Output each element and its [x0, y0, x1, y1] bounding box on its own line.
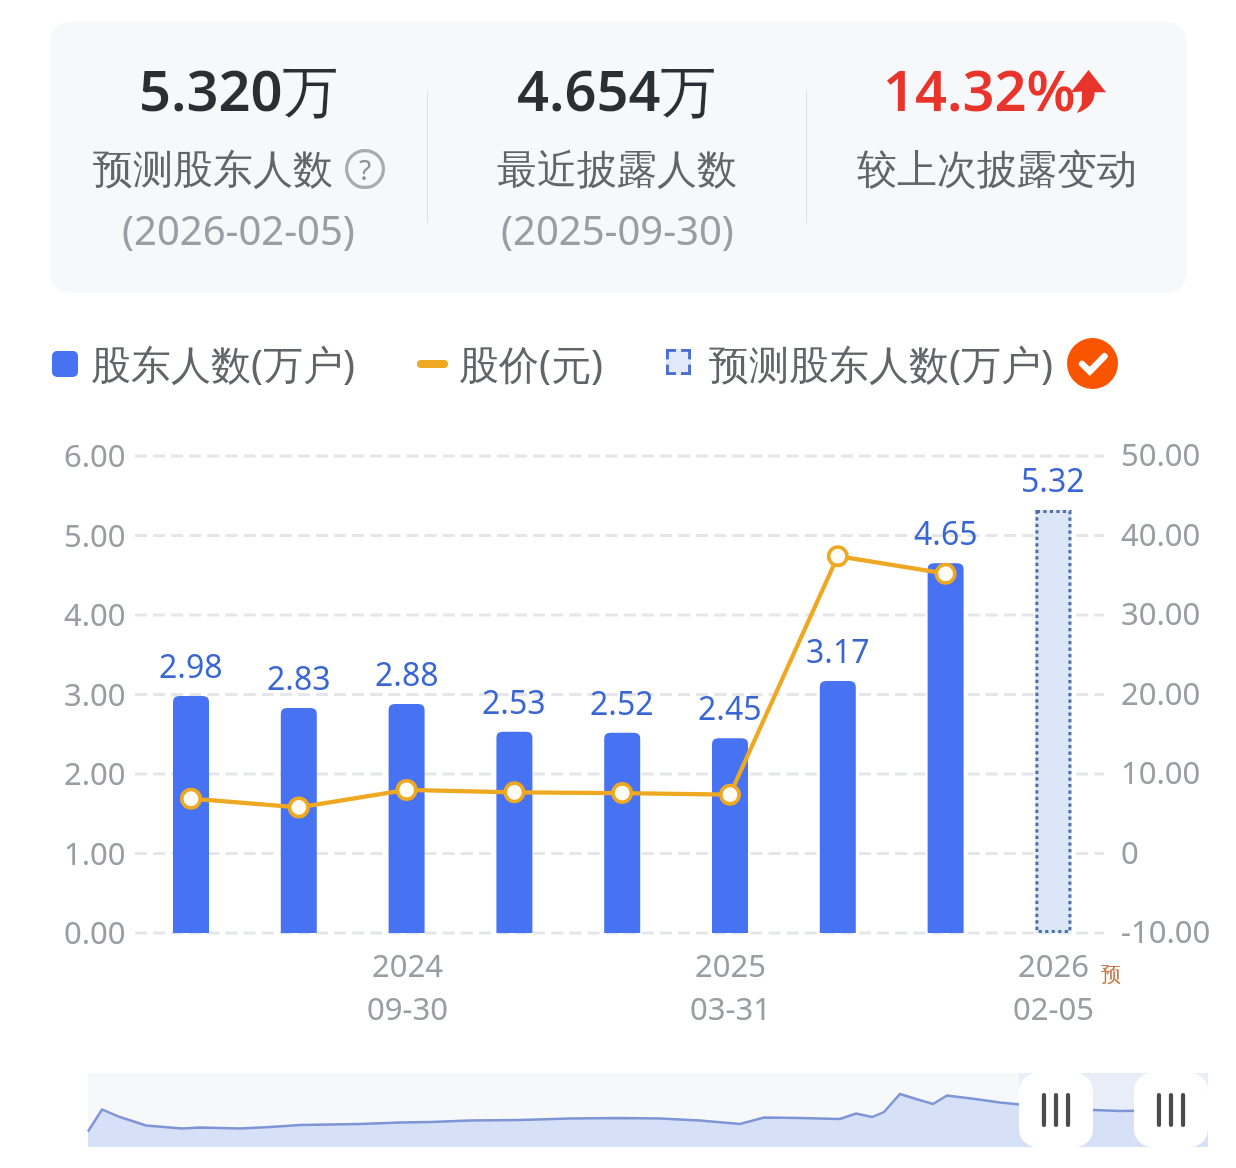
staticText: 1.00: [64, 832, 126, 874]
staticText: 预: [1101, 962, 1121, 987]
button[interactable]: 股东人数(万户): [52, 336, 355, 391]
staticText: 最近披露人数: [497, 144, 737, 194]
staticText: 2.52: [590, 681, 654, 725]
button[interactable]: Range end handle: [1134, 1073, 1208, 1147]
staticText: 2026: [1018, 944, 1089, 986]
staticText: (2026-02-05): [122, 202, 355, 256]
staticText: 预测股东人数(万户): [709, 336, 1053, 391]
button[interactable]: 股价(元): [418, 336, 603, 391]
staticText: 20.00: [1121, 672, 1201, 714]
staticText: 14.32%: [883, 51, 1076, 127]
staticText: 2.00: [64, 752, 126, 794]
staticText: 预测股东人数: [93, 144, 333, 194]
staticText: (2025-09-30): [501, 202, 734, 256]
staticText: 股东人数(万户): [91, 336, 355, 391]
button[interactable]: Range start handle: [1019, 1073, 1093, 1147]
staticText: 5.320万: [139, 51, 339, 127]
staticText: 50.00: [1121, 433, 1201, 475]
staticText: 09-30: [367, 987, 448, 1029]
staticText: 2024: [372, 944, 443, 986]
staticText: 40.00: [1121, 513, 1201, 555]
staticText: 2.45: [698, 686, 762, 730]
staticText: 6.00: [64, 434, 126, 476]
staticText: 股价(元): [459, 336, 603, 391]
staticText: 5.32: [1021, 458, 1085, 502]
staticText: 2.83: [267, 656, 331, 700]
staticText: 2.98: [159, 644, 223, 688]
staticText: 4.00: [64, 593, 126, 635]
button[interactable]: 预测股东人数(万户): [666, 336, 1053, 391]
button[interactable]: 5.320万: [50, 22, 1187, 293]
staticText: 03-31: [690, 987, 771, 1029]
staticText: 4.654万: [517, 51, 717, 127]
button[interactable]: Toggle forecast series: [1067, 338, 1118, 389]
staticText: 10.00: [1121, 751, 1201, 793]
staticText: ?: [359, 150, 372, 188]
staticText: 2025: [695, 944, 766, 986]
staticText: 0.00: [64, 911, 126, 953]
staticText: 3.17: [806, 629, 870, 673]
staticText: 2.53: [482, 680, 546, 724]
staticText: 5.00: [64, 514, 126, 556]
staticText: 2.88: [375, 652, 439, 696]
staticText: 较上次披露变动: [857, 144, 1137, 194]
staticText: 4.65: [914, 511, 978, 555]
staticText: -10.00: [1121, 910, 1211, 952]
staticText: 30.00: [1121, 592, 1201, 634]
staticText: 02-05: [1013, 987, 1094, 1029]
staticText: 3.00: [64, 673, 126, 715]
staticText: 0: [1121, 831, 1139, 873]
